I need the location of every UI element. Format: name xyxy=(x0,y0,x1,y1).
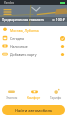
button[interactable]: Тарифы xyxy=(45,86,67,101)
staticText: Сегодня xyxy=(10,36,25,41)
staticText: Комфорт xyxy=(27,96,41,100)
staticText: Найти автомобиль xyxy=(15,108,53,113)
button[interactable]: Наличные xyxy=(0,42,67,50)
staticText: Yandex xyxy=(4,1,15,5)
button[interactable]: Добавить карту xyxy=(0,50,67,58)
button[interactable]: Menu xyxy=(2,7,12,17)
staticText: Предварительная стоимость xyxy=(2,18,45,22)
staticText: ≈ 100 ₽ xyxy=(52,17,65,22)
staticText: Эконом xyxy=(6,96,18,100)
button[interactable]: Сегодня xyxy=(0,34,67,42)
staticText: Тарифы xyxy=(50,96,62,100)
staticText: Добавить карту xyxy=(10,52,37,57)
button[interactable]: Москва, Лубянка xyxy=(0,26,67,34)
button[interactable]: Эконом xyxy=(0,86,23,101)
staticText: Москва, Лубянка xyxy=(10,28,39,33)
staticText: Наличные xyxy=(10,44,28,49)
button[interactable]: Комфорт xyxy=(23,86,45,101)
button[interactable]: Найти автомобиль xyxy=(2,105,65,115)
